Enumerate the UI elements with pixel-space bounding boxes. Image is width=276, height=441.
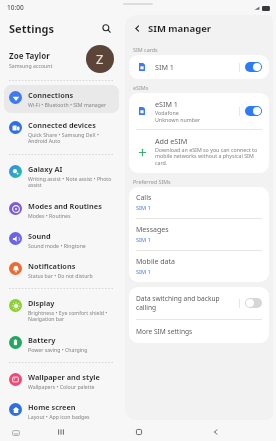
staticText: Messages bbox=[136, 225, 169, 235]
staticText: Preferred SIMs bbox=[133, 178, 171, 185]
staticText: Wallpapers • Colour palette bbox=[28, 383, 95, 390]
staticText: Unknown number bbox=[155, 116, 201, 123]
button[interactable]: Modes and Routines bbox=[4, 196, 119, 224]
staticText: Power saving • Charging bbox=[28, 346, 88, 353]
staticText: Z bbox=[96, 50, 104, 68]
staticText: Vodafone bbox=[155, 109, 179, 116]
staticText: Calls bbox=[136, 193, 152, 203]
staticText: Display bbox=[28, 298, 55, 308]
staticText: Sound mode • Ringtone bbox=[28, 242, 86, 249]
staticText: SIM 1 bbox=[136, 268, 151, 276]
button[interactable]: SIM 1 bbox=[129, 55, 269, 79]
button[interactable]: eSIM 1 bbox=[129, 93, 269, 129]
staticText: Galaxy AI bbox=[28, 164, 63, 174]
staticText: Connected devices bbox=[28, 120, 96, 130]
staticText: SIM 1 bbox=[136, 236, 151, 244]
staticText: Download an eSIM so you can connect to m… bbox=[155, 146, 262, 167]
staticText: Battery bbox=[28, 335, 56, 345]
staticText: Modes • Routines bbox=[28, 212, 71, 219]
button[interactable]: Calls bbox=[129, 187, 269, 218]
button[interactable]: Galaxy AI bbox=[4, 159, 119, 194]
staticText: Home screen bbox=[28, 402, 76, 412]
staticText: SIM 1 bbox=[136, 204, 151, 212]
staticText: Writing assist • Note assist • Photo ass… bbox=[28, 175, 114, 189]
button[interactable]: Notifications bbox=[4, 256, 119, 284]
staticText: SIM cards bbox=[133, 46, 158, 53]
button[interactable]: Home bbox=[131, 424, 147, 440]
button[interactable]: More SIM settings bbox=[129, 320, 269, 343]
staticText: Data switching and backup calling bbox=[136, 294, 239, 312]
button[interactable]: On bbox=[245, 62, 262, 72]
button[interactable]: Data switching and backup calling bbox=[129, 287, 269, 319]
staticText: SIM manager bbox=[148, 22, 212, 35]
staticText: Mobile data bbox=[136, 257, 175, 267]
button[interactable]: Zoe Taylor bbox=[9, 41, 114, 77]
staticText: Wi-Fi • Bluetooth • SIM manager bbox=[28, 101, 107, 108]
staticText: Wallpaper and style bbox=[28, 372, 100, 382]
staticText: Sound bbox=[28, 231, 51, 241]
staticText: Connections bbox=[28, 90, 74, 100]
button[interactable]: On bbox=[245, 106, 262, 116]
button[interactable]: Battery bbox=[4, 330, 119, 358]
button[interactable]: Back bbox=[208, 424, 224, 440]
staticText: Add eSIM bbox=[155, 136, 188, 146]
staticText: Notifications bbox=[28, 261, 76, 271]
button[interactable]: Keyboard bbox=[10, 427, 21, 438]
button[interactable]: Sound bbox=[4, 226, 119, 254]
staticText: Status bar • Do not disturb bbox=[28, 272, 93, 279]
button[interactable]: Connections bbox=[4, 85, 119, 113]
button[interactable]: Home screen bbox=[4, 397, 119, 423]
staticText: More SIM settings bbox=[136, 327, 193, 336]
staticText: Quick Share • Samsung DeX • Android Auto bbox=[28, 131, 114, 145]
button[interactable]: Connected devices bbox=[4, 115, 119, 150]
button[interactable]: Recents bbox=[53, 424, 69, 440]
button[interactable]: Back bbox=[130, 21, 145, 36]
staticText: 10:00 bbox=[7, 3, 24, 12]
staticText: Settings bbox=[9, 21, 55, 36]
staticText: Modes and Routines bbox=[28, 201, 102, 211]
button[interactable]: Add eSIM bbox=[129, 130, 269, 173]
staticText: SIM 1 bbox=[155, 62, 174, 72]
button[interactable]: Search bbox=[98, 20, 114, 36]
staticText: eSIMs bbox=[133, 84, 149, 91]
button[interactable]: Display bbox=[4, 293, 119, 328]
staticText: Zoe Taylor bbox=[9, 50, 50, 61]
staticText: Layout • App icon badges bbox=[28, 413, 90, 420]
button[interactable]: Wallpaper and style bbox=[4, 367, 119, 395]
staticText: Samsung account bbox=[9, 62, 53, 69]
button[interactable]: Messages bbox=[129, 219, 269, 250]
staticText: eSIM 1 bbox=[155, 99, 178, 109]
button[interactable]: Off bbox=[245, 298, 262, 308]
button[interactable]: Mobile data bbox=[129, 251, 269, 282]
staticText: Brightness • Eye comfort shield • Naviga… bbox=[28, 309, 114, 323]
